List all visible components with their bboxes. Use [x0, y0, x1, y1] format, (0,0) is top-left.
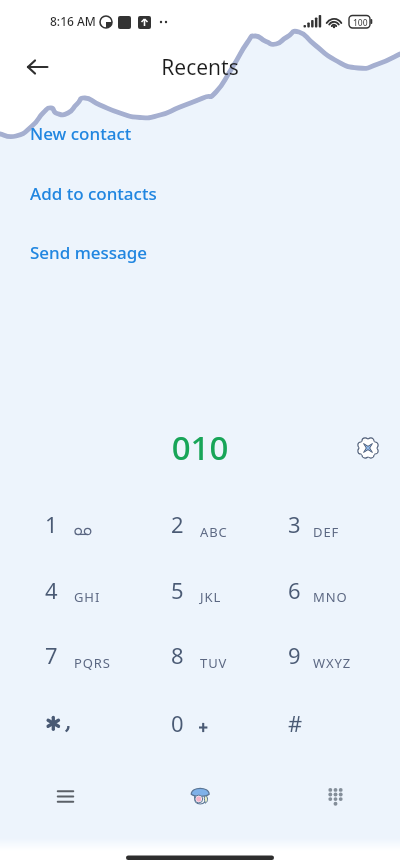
staticText: WXYZ	[313, 654, 352, 672]
button[interactable]	[267, 697, 400, 763]
staticText: 100	[353, 17, 368, 29]
staticText: 4	[45, 575, 58, 605]
button[interactable]	[133, 500, 266, 566]
button[interactable]: Add to contacts	[30, 178, 230, 210]
staticText: #	[288, 708, 303, 738]
button[interactable]	[133, 631, 266, 697]
staticText: 2	[171, 509, 184, 539]
staticText: 0	[171, 708, 184, 738]
button[interactable]	[267, 631, 400, 697]
staticText: MNO	[313, 588, 348, 606]
button[interactable]	[0, 500, 133, 566]
staticText: 8:16 AM	[50, 13, 96, 29]
staticText: 3	[288, 509, 301, 539]
button[interactable]	[0, 566, 133, 632]
button[interactable]: Send message	[30, 237, 230, 269]
staticText: 8	[171, 640, 184, 670]
staticText: New contact	[30, 122, 132, 145]
staticText: ABC	[200, 523, 228, 541]
button[interactable]: Call history	[0, 772, 134, 822]
button[interactable]: Dialpad	[267, 772, 400, 822]
staticText: 010	[0, 425, 400, 470]
button[interactable]: Assistant	[134, 772, 267, 822]
staticText: TUV	[200, 654, 228, 672]
staticText: Recents	[0, 53, 400, 82]
button[interactable]	[133, 566, 266, 632]
staticText: 9	[288, 640, 301, 670]
button[interactable]: Delete	[352, 432, 384, 464]
button[interactable]	[267, 500, 400, 566]
button[interactable]: Back	[13, 43, 61, 91]
staticText: 6	[288, 575, 301, 605]
staticText: GHI	[74, 588, 101, 606]
button[interactable]	[0, 697, 133, 763]
staticText: 1	[45, 509, 58, 539]
staticText: JKL	[200, 588, 222, 606]
button[interactable]: New contact	[30, 118, 230, 150]
staticText: PQRS	[74, 654, 111, 672]
button[interactable]	[133, 697, 266, 763]
staticText: Send message	[30, 241, 148, 264]
button[interactable]	[267, 566, 400, 632]
staticText: 5	[171, 575, 184, 605]
staticText: 7	[45, 640, 58, 670]
button[interactable]	[0, 631, 133, 697]
staticText: DEF	[313, 523, 340, 541]
staticText: Add to contacts	[30, 182, 157, 205]
